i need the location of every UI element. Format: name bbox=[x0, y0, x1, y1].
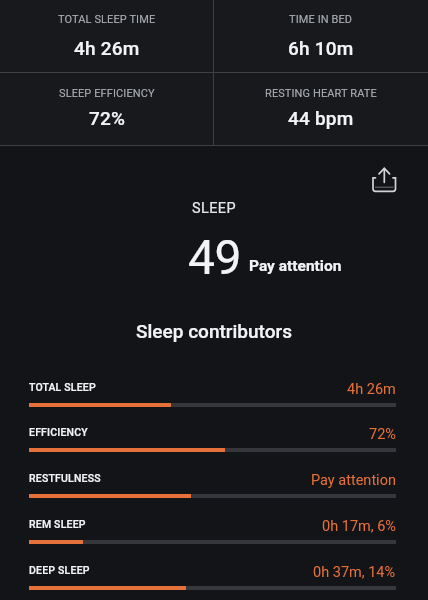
staticText: SLEEP bbox=[192, 200, 237, 217]
staticText: 44 bpm bbox=[288, 107, 354, 129]
button[interactable]: RESTING HEART RATE bbox=[214, 73, 428, 146]
staticText: 4h 26m bbox=[347, 381, 396, 398]
button[interactable]: DEEP SLEEP bbox=[29, 564, 396, 590]
button[interactable]: EFFICIENCY bbox=[29, 426, 396, 452]
staticText: EFFICIENCY bbox=[29, 426, 88, 438]
staticText: RESTING HEART RATE bbox=[265, 87, 377, 100]
staticText: TOTAL SLEEP bbox=[29, 381, 96, 393]
staticText: 0h 37m, 14% bbox=[313, 564, 396, 581]
button[interactable] bbox=[368, 162, 400, 194]
button[interactable]: SLEEP EFFICIENCY bbox=[0, 73, 214, 146]
staticText: Sleep contributors bbox=[136, 320, 292, 342]
staticText: Pay attention bbox=[311, 472, 396, 489]
staticText: REM SLEEP bbox=[29, 518, 86, 530]
staticText: 0h 17m, 6% bbox=[322, 518, 396, 535]
staticText: SLEEP EFFICIENCY bbox=[59, 87, 155, 100]
staticText: 4h 26m bbox=[74, 37, 140, 59]
staticText: 72% bbox=[369, 426, 396, 443]
button[interactable]: TOTAL SLEEP TIME bbox=[0, 0, 214, 73]
button[interactable]: TIME IN BED bbox=[214, 0, 428, 73]
staticText: 72% bbox=[89, 107, 126, 129]
staticText: Pay attention bbox=[249, 257, 342, 275]
staticText: TOTAL SLEEP TIME bbox=[58, 13, 156, 26]
staticText: 6h 10m bbox=[288, 37, 354, 59]
button[interactable]: TOTAL SLEEP bbox=[29, 381, 396, 407]
staticText: 49 bbox=[188, 229, 241, 285]
staticText: TIME IN BED bbox=[289, 13, 353, 26]
staticText: DEEP SLEEP bbox=[29, 564, 90, 576]
button[interactable]: RESTFULNESS bbox=[29, 472, 396, 498]
staticText: RESTFULNESS bbox=[29, 472, 101, 484]
button[interactable]: REM SLEEP bbox=[29, 518, 396, 544]
